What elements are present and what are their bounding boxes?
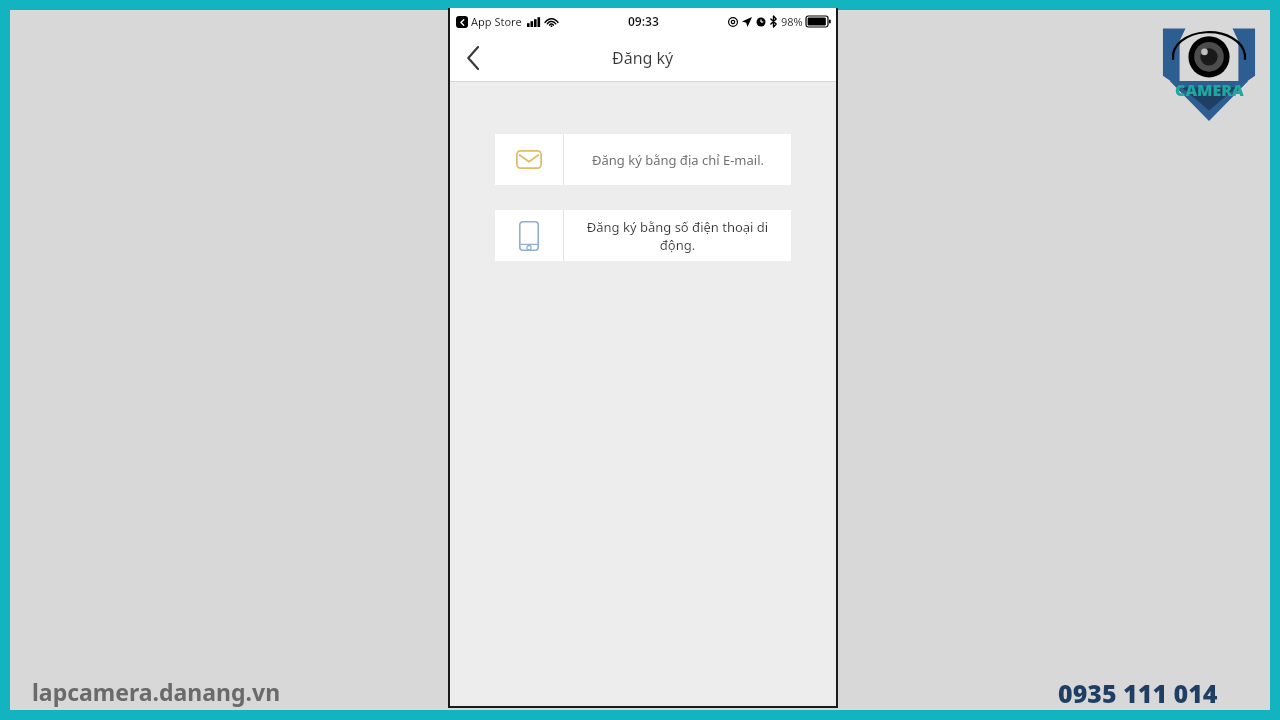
staticText: lapcamera.danang.vn xyxy=(32,676,281,707)
button[interactable]: Đăng ký bằng địa chỉ E-mail. xyxy=(495,134,791,185)
staticText: Đăng ký bằng địa chỉ E-mail. xyxy=(592,151,764,169)
staticText: Đăng ký bằng số điện thoại di động. xyxy=(570,218,785,254)
staticText: 09:33 xyxy=(628,13,659,29)
staticText: 98% xyxy=(781,14,803,29)
staticText: Đăng ký xyxy=(612,47,674,69)
button[interactable]: Đăng ký bằng số điện thoại di động. xyxy=(495,210,791,261)
staticText: 0935 111 014 xyxy=(1058,676,1218,710)
staticText: App Store xyxy=(471,14,522,29)
staticText: CAMERA xyxy=(1175,79,1244,101)
button[interactable]: Back xyxy=(450,34,496,82)
